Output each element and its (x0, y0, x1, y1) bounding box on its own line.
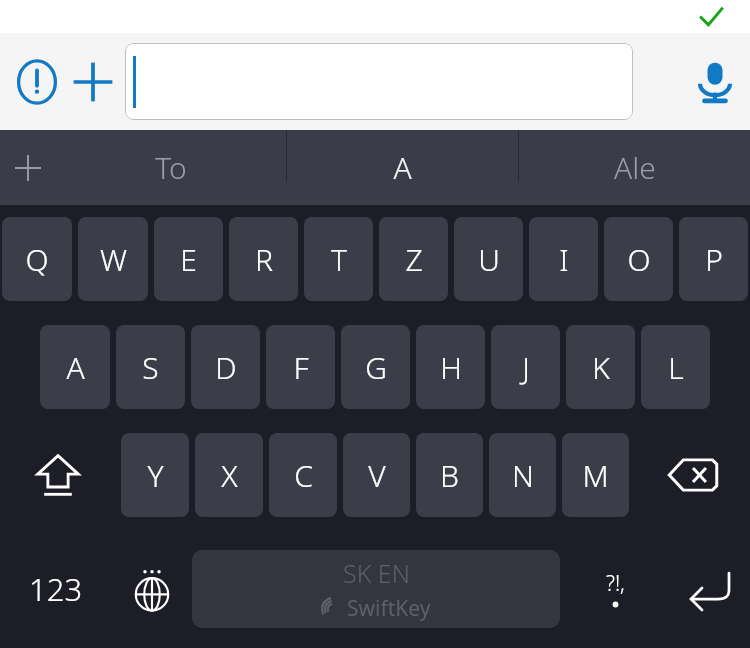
button[interactable]: F (266, 325, 335, 409)
staticText: P (705, 239, 723, 280)
staticText: S (142, 347, 159, 388)
button[interactable]: Backspace (635, 433, 750, 517)
staticText: I (559, 239, 569, 280)
staticText: E (180, 239, 197, 280)
button[interactable]: S (116, 325, 185, 409)
staticText: J (522, 347, 530, 388)
staticText: Y (147, 455, 164, 496)
button[interactable]: L (641, 325, 710, 409)
staticText: D (215, 347, 237, 388)
staticText: A (66, 347, 85, 388)
staticText: M (582, 455, 609, 496)
button[interactable]: B (416, 433, 483, 517)
staticText: Ale (614, 147, 656, 188)
button[interactable]: C (269, 433, 337, 517)
button[interactable]: E (154, 217, 223, 301)
button[interactable]: X (195, 433, 263, 517)
staticText: SwiftKey (347, 594, 431, 623)
staticText: 123 (29, 568, 83, 610)
button[interactable]: W (78, 217, 148, 301)
staticText: X (221, 455, 238, 496)
button[interactable]: V (343, 433, 410, 517)
button[interactable]: Q (2, 217, 72, 301)
button[interactable]: U (454, 217, 523, 301)
button[interactable]: H (416, 325, 485, 409)
button[interactable]: Z (379, 217, 448, 301)
button[interactable]: Enter (670, 529, 750, 648)
staticText: Z (405, 239, 423, 280)
staticText: N (512, 455, 534, 496)
button[interactable]: R (229, 217, 298, 301)
button[interactable]: G (341, 325, 410, 409)
staticText: G (365, 347, 387, 388)
staticText: B (440, 455, 459, 496)
button[interactable]: O (604, 217, 673, 301)
button[interactable]: Y (121, 433, 189, 517)
staticText: W (100, 239, 127, 280)
button[interactable]: Add attachment (64, 53, 122, 111)
staticText: R (255, 239, 273, 280)
staticText: T (331, 239, 347, 280)
staticText: H (440, 347, 462, 388)
button[interactable]: I (529, 217, 598, 301)
staticText: Q (25, 239, 49, 280)
staticText: U (478, 239, 500, 280)
staticText: To (155, 147, 187, 188)
button[interactable]: Change language (112, 529, 192, 648)
staticText: K (592, 347, 610, 388)
button[interactable] (125, 43, 633, 120)
staticText: V (368, 455, 386, 496)
staticText: F (293, 347, 309, 388)
button[interactable]: Shift (0, 433, 115, 517)
button[interactable]: N (489, 433, 556, 517)
button[interactable]: 123 (0, 529, 112, 648)
button[interactable]: J (491, 325, 560, 409)
button[interactable]: T (304, 217, 373, 301)
button[interactable]: D (191, 325, 260, 409)
button[interactable]: Confirm (694, 0, 728, 33)
staticText: ?!, (606, 569, 625, 598)
staticText: A (393, 147, 412, 188)
button[interactable]: A (40, 325, 110, 409)
button[interactable]: M (562, 433, 629, 517)
button[interactable]: A (287, 130, 518, 205)
button[interactable]: Ale (519, 130, 750, 205)
staticText: L (668, 347, 684, 388)
staticText: SK EN (343, 556, 410, 590)
button[interactable]: Info (10, 55, 64, 109)
button[interactable]: More suggestions (0, 130, 56, 205)
staticText: C (294, 455, 313, 496)
button[interactable]: Punctuation (560, 529, 670, 648)
button[interactable]: To (56, 130, 286, 205)
button[interactable]: P (679, 217, 748, 301)
button[interactable]: SK EN (192, 550, 560, 628)
staticText: O (627, 239, 651, 280)
button[interactable]: Voice input (680, 47, 750, 117)
button[interactable]: K (566, 325, 635, 409)
